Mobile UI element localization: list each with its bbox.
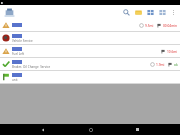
- staticText: ok: [174, 63, 178, 67]
- staticText: 10.6mi: [167, 50, 178, 54]
- button[interactable]: Brakes Oil Change Service: [0, 58, 180, 71]
- button[interactable]: More options: [169, 8, 178, 17]
- staticText: Fuel Left: [12, 52, 25, 56]
- button[interactable]: List view: [158, 8, 167, 17]
- button[interactable]: 9.5mi: [0, 19, 180, 32]
- staticText: 00:04min: [163, 24, 178, 28]
- button[interactable]: Vehicle Service: [0, 32, 180, 45]
- button[interactable]: Grid view: [146, 8, 155, 17]
- button[interactable]: Search: [122, 8, 131, 17]
- button[interactable]: Back: [38, 125, 47, 134]
- button[interactable]: Folder: [134, 8, 143, 17]
- button[interactable]: Home: [86, 125, 95, 134]
- button[interactable]: Fuel Left: [0, 45, 180, 58]
- button[interactable]: Recent apps: [133, 125, 142, 134]
- staticText: Vehicle Service: [12, 39, 33, 43]
- button[interactable]: App logo: [4, 7, 15, 18]
- staticText: 9.5mi: [145, 24, 154, 28]
- button[interactable]: unit: [0, 71, 180, 84]
- staticText: unit: [12, 78, 18, 82]
- staticText: Brakes Oil Change Service: [12, 65, 51, 69]
- staticText: 1.9mi: [156, 63, 165, 67]
